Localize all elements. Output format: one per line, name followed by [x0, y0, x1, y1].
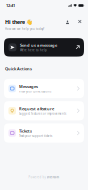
- button[interactable]: Messages: [4, 79, 84, 98]
- button[interactable]: Tickets: [4, 123, 84, 143]
- button[interactable]: Request a feature: [4, 101, 84, 120]
- staticText: 12:41: [6, 3, 15, 8]
- button[interactable]: Profile: [65, 20, 70, 25]
- staticText: Intercom: [46, 175, 59, 179]
- staticText: Hi there 👋: [5, 18, 33, 26]
- staticText: Request a feature: [19, 106, 54, 111]
- staticText: How can we help you today?: [5, 27, 44, 31]
- staticText: We're here to help: [20, 48, 47, 52]
- staticText: Powered by: [28, 175, 46, 179]
- staticText: View your conversations: [19, 90, 51, 93]
- staticText: Suggest features or improvements: [19, 112, 66, 115]
- button[interactable]: Close: [78, 20, 83, 25]
- staticText: Send us a message: [20, 43, 57, 48]
- button[interactable]: Send us a message: [4, 38, 84, 57]
- staticText: Messages: [19, 84, 38, 89]
- staticText: Quick Actions: [5, 66, 32, 71]
- staticText: Tickets: [19, 128, 32, 134]
- staticText: Track your support tickets: [19, 134, 52, 138]
